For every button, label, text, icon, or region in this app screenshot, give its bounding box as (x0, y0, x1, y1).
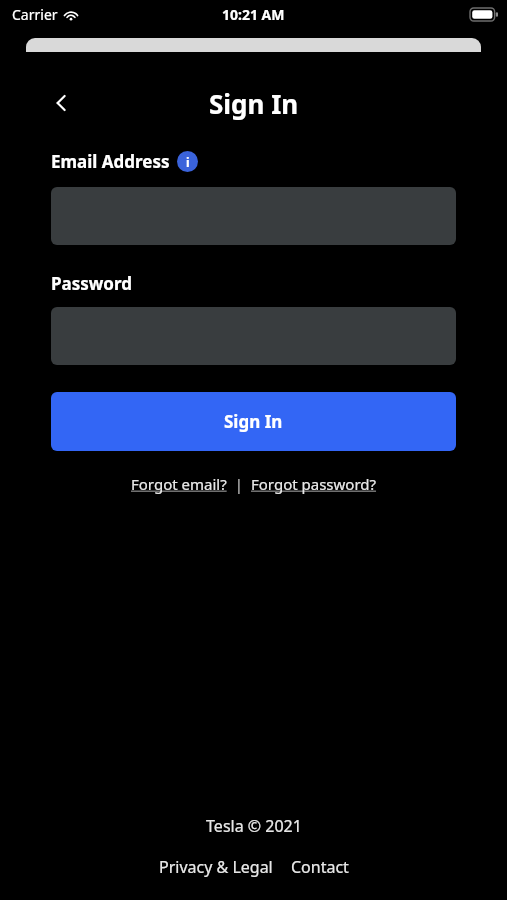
staticText: Sign In (224, 410, 283, 433)
staticText: i (186, 154, 190, 170)
button[interactable]: Back (40, 81, 84, 125)
staticText: | (227, 474, 251, 494)
staticText: 10:21 AM (222, 5, 285, 24)
button[interactable]: Forgot password? (251, 474, 377, 494)
staticText: Sign In (209, 86, 299, 121)
staticText: Carrier (12, 5, 58, 24)
staticText: Password (51, 272, 132, 295)
staticText: Email Address (51, 150, 170, 173)
staticText: Forgot password? (251, 474, 377, 494)
button[interactable]: Email address info (177, 151, 198, 172)
button[interactable]: Privacy & Legal (159, 856, 273, 878)
button[interactable]: Forgot email? (131, 474, 227, 494)
staticText: Contact (291, 856, 349, 878)
button[interactable]: Sign In (51, 392, 456, 451)
staticText: Forgot email? (131, 474, 227, 494)
button[interactable]: Contact (291, 856, 349, 878)
staticText: Privacy & Legal (159, 856, 273, 878)
staticText: Tesla © 2021 (206, 815, 302, 837)
